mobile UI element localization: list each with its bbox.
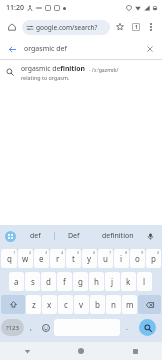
- staticText: orgasmic definition: [21, 64, 86, 73]
- button[interactable]: l: [137, 272, 152, 291]
- staticText: f: [63, 276, 66, 287]
- staticText: r: [56, 253, 60, 264]
- staticText: w: [22, 253, 29, 264]
- staticText: 9: [141, 250, 144, 255]
- staticText: h: [94, 276, 99, 287]
- button[interactable]: f: [57, 272, 72, 291]
- button[interactable]: Hide keyboard: [0, 342, 54, 360]
- button[interactable]: Back: [6, 43, 18, 55]
- button[interactable]: b: [90, 295, 105, 314]
- button[interactable]: ?123: [1, 319, 24, 336]
- staticText: q: [7, 253, 12, 264]
- button[interactable]: c: [58, 295, 73, 314]
- button[interactable]: Toolbar: [5, 231, 16, 242]
- staticText: .: [126, 323, 128, 333]
- button[interactable]: Home: [54, 342, 108, 360]
- button[interactable]: r: [50, 249, 65, 268]
- staticText: o: [135, 253, 140, 264]
- staticText: e: [39, 253, 44, 264]
- staticText: g: [78, 276, 83, 287]
- staticText: c: [64, 299, 68, 310]
- button[interactable]: n: [106, 295, 121, 314]
- button[interactable]: o: [130, 249, 145, 268]
- staticText: x: [47, 299, 52, 310]
- staticText: v: [79, 299, 84, 310]
- staticText: · /ɔːˈɡazmɪk/: [89, 66, 119, 73]
- button[interactable]: ,: [25, 316, 37, 339]
- button[interactable]: Shift: [1, 295, 25, 314]
- button[interactable]: v: [74, 295, 89, 314]
- button[interactable]: s: [25, 272, 40, 291]
- staticText: k: [126, 276, 131, 287]
- button[interactable]: .: [121, 316, 133, 339]
- button[interactable]: Bookmark: [112, 19, 128, 35]
- button[interactable]: x: [42, 295, 57, 314]
- button[interactable]: Back: [0, 38, 162, 59]
- staticText: orgasmic def: [24, 44, 67, 54]
- staticText: b: [95, 299, 100, 310]
- staticText: l: [143, 276, 146, 287]
- staticText: definition: [102, 231, 134, 241]
- staticText: 2: [29, 250, 32, 255]
- staticText: p: [151, 253, 156, 264]
- button[interactable]: Home: [4, 19, 20, 35]
- button[interactable]: Emoji: [38, 316, 53, 339]
- button[interactable]: z: [26, 295, 41, 314]
- staticText: m: [126, 299, 134, 310]
- button[interactable]: e: [34, 249, 49, 268]
- staticText: t: [72, 253, 75, 264]
- button[interactable]: Backspace: [138, 295, 161, 314]
- staticText: ,: [30, 323, 32, 333]
- button[interactable]: Recent apps: [108, 342, 162, 360]
- button[interactable]: Voice input: [143, 229, 157, 243]
- staticText: i: [120, 253, 123, 264]
- button[interactable]: u: [98, 249, 113, 268]
- staticText: 5: [77, 250, 80, 255]
- button[interactable]: m: [122, 295, 137, 314]
- staticText: 4: [61, 250, 64, 255]
- staticText: j: [111, 276, 114, 287]
- staticText: y: [87, 253, 92, 264]
- staticText: n: [111, 299, 116, 310]
- button[interactable]: k: [121, 272, 136, 291]
- button[interactable]: y: [82, 249, 97, 268]
- button[interactable]: Tabs: [128, 19, 144, 35]
- staticText: 7: [109, 250, 112, 255]
- staticText: def: [30, 231, 41, 241]
- staticText: 8: [125, 250, 128, 255]
- button[interactable]: def: [30, 225, 41, 247]
- staticText: s: [31, 276, 35, 287]
- staticText: 0: [157, 250, 160, 255]
- button[interactable]: More options: [144, 20, 158, 34]
- staticText: google.com/search?clier: [36, 23, 105, 32]
- staticText: z: [32, 299, 36, 310]
- button[interactable]: g: [73, 272, 88, 291]
- staticText: ?123: [6, 324, 19, 332]
- staticText: u: [103, 253, 108, 264]
- button[interactable]: Clear: [144, 43, 156, 55]
- button[interactable]: google.com/search?clier: [22, 20, 110, 35]
- staticText: 11:20: [6, 3, 24, 13]
- button[interactable]: j: [105, 272, 120, 291]
- staticText: 3: [45, 250, 48, 255]
- button[interactable]: definition: [102, 225, 134, 247]
- button[interactable]: d: [41, 272, 56, 291]
- button[interactable]: t: [66, 249, 81, 268]
- button[interactable]: orgasmic definition: [0, 60, 162, 84]
- staticText: 1: [135, 24, 138, 31]
- button[interactable]: a: [9, 272, 24, 291]
- button[interactable]: Search: [139, 319, 156, 336]
- button[interactable]: h: [89, 272, 104, 291]
- staticText: relating to orgasm.: [21, 74, 70, 81]
- button[interactable]: p: [146, 249, 161, 268]
- staticText: d: [46, 276, 51, 287]
- button[interactable]: i: [114, 249, 129, 268]
- button[interactable]: q: [1, 249, 17, 268]
- staticText: Def: [68, 231, 80, 241]
- staticText: 6: [93, 250, 96, 255]
- button[interactable]: Def: [68, 225, 80, 247]
- staticText: a: [14, 276, 19, 287]
- staticText: 1: [13, 250, 16, 255]
- button[interactable]: w: [18, 249, 33, 268]
